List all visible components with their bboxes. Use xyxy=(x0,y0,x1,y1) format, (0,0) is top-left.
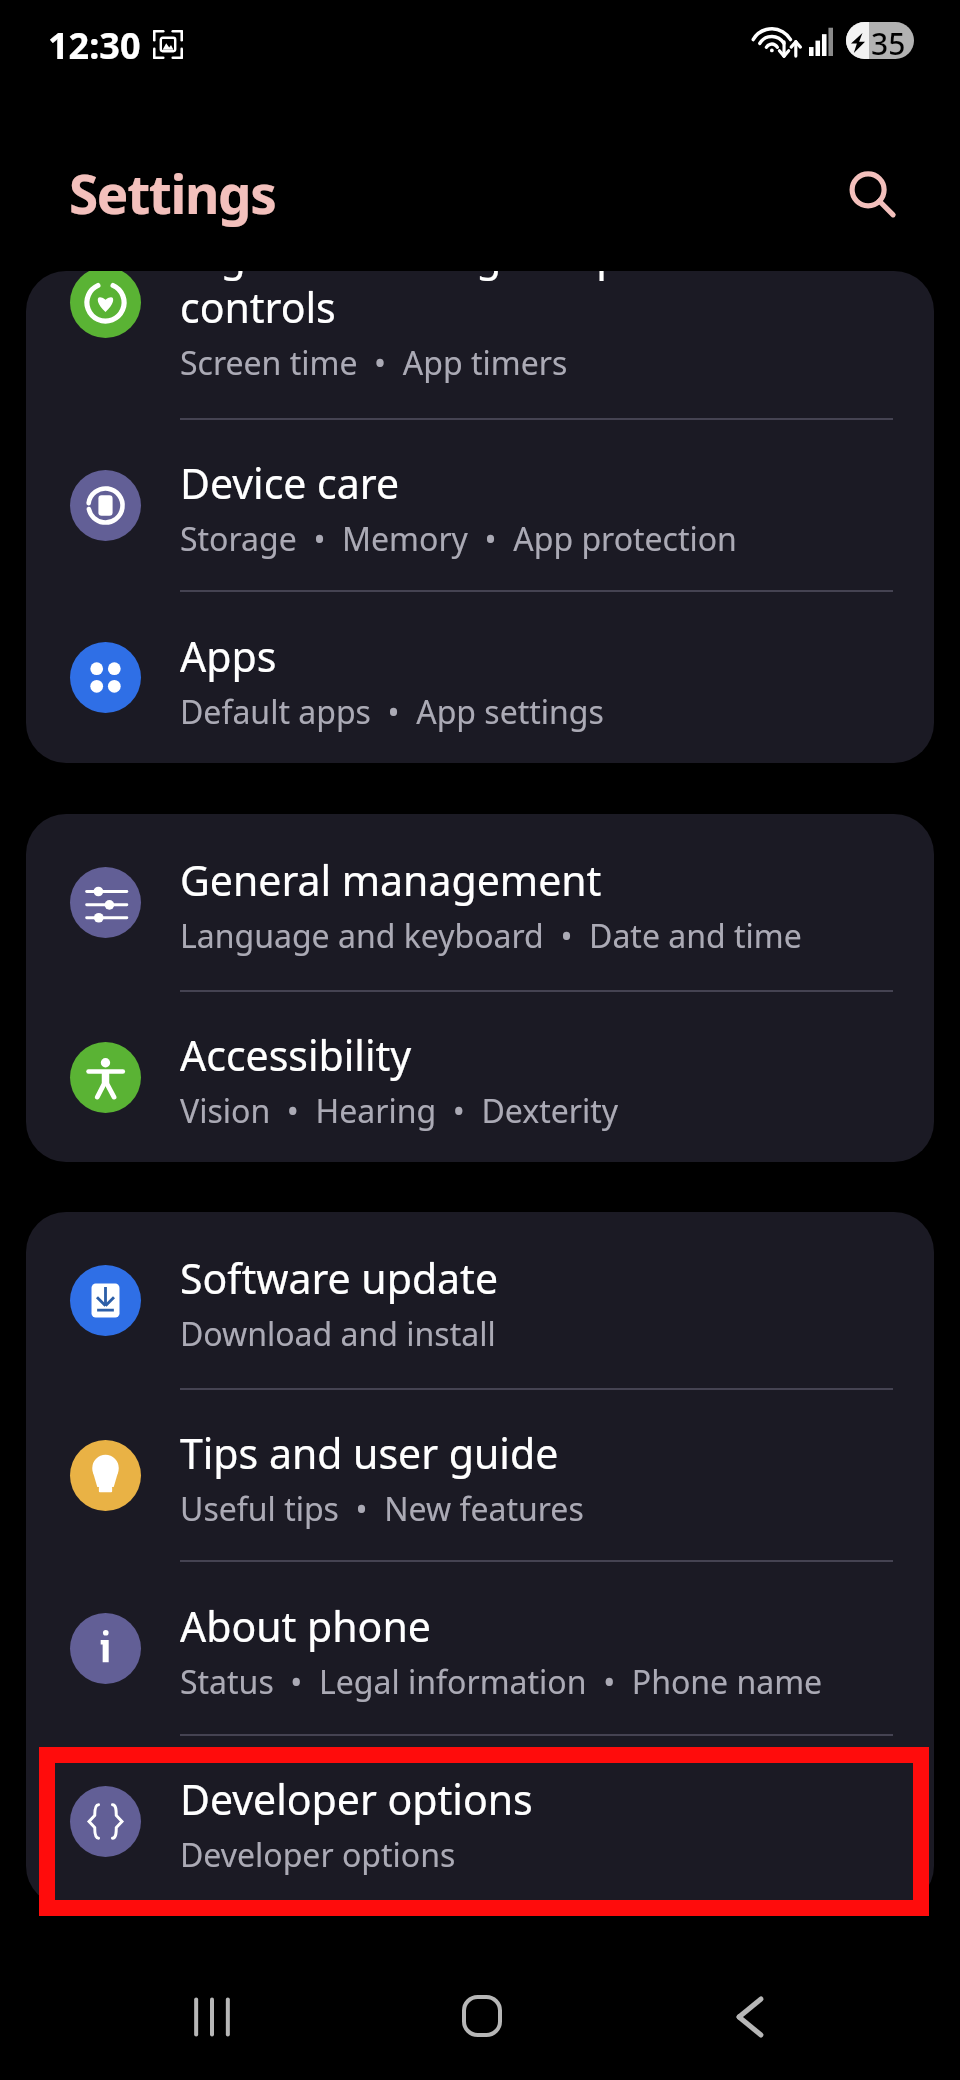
button[interactable]: Tips and user guide xyxy=(26,1390,934,1560)
button[interactable]: Accessibility xyxy=(26,992,934,1162)
button[interactable]: About phone xyxy=(26,1562,934,1734)
button[interactable]: Software update xyxy=(26,1212,934,1388)
staticText: Storage • Memory • App protection xyxy=(180,517,737,561)
staticText: 12:30 xyxy=(48,21,141,70)
staticText: Digital wellbeing and parental controls xyxy=(180,271,880,335)
staticText: Default apps • App settings xyxy=(180,690,604,734)
staticText: Vision • Hearing • Dexterity xyxy=(180,1089,619,1133)
staticText: Developer options xyxy=(180,1771,533,1827)
button[interactable]: Device care xyxy=(26,420,934,590)
staticText: Software update xyxy=(180,1250,499,1306)
button[interactable]: Digital wellbeing and parental controls xyxy=(26,271,934,418)
button[interactable]: Search xyxy=(832,155,912,235)
staticText: Accessibility xyxy=(180,1027,412,1083)
staticText: Device care xyxy=(180,455,400,511)
staticText: General management xyxy=(180,852,602,908)
staticText: Settings xyxy=(69,157,276,229)
staticText: Language and keyboard • Date and time xyxy=(180,914,802,958)
staticText: About phone xyxy=(180,1598,431,1654)
button[interactable]: Developer options xyxy=(26,1736,934,1906)
staticText: 35 xyxy=(871,23,906,59)
staticText: Download and install xyxy=(180,1312,496,1356)
button[interactable]: General management xyxy=(26,814,934,990)
button[interactable]: Recent apps xyxy=(152,1957,272,2077)
staticText: Apps xyxy=(180,628,277,684)
staticText: Developer options xyxy=(180,1833,456,1877)
staticText: Tips and user guide xyxy=(180,1425,559,1481)
staticText: Screen time • App timers xyxy=(180,341,568,385)
button[interactable]: Apps xyxy=(26,592,934,763)
staticText: Useful tips • New features xyxy=(180,1487,584,1531)
button[interactable]: Back xyxy=(690,1957,810,2077)
button[interactable]: Home xyxy=(422,1956,542,2076)
staticText: Status • Legal information • Phone name xyxy=(180,1660,823,1704)
